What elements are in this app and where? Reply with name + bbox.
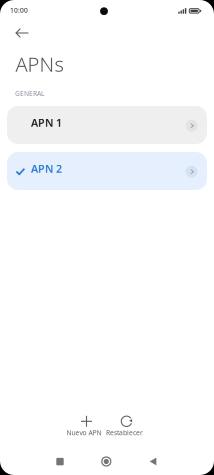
staticText: APNs xyxy=(15,51,63,77)
button[interactable]: APN 2 xyxy=(7,152,207,190)
button[interactable]: APN 1 xyxy=(7,106,207,144)
button[interactable]: Back xyxy=(6,20,38,46)
staticText: Restablecer xyxy=(106,428,143,437)
staticText: 10:00 xyxy=(10,6,28,15)
button[interactable]: Restablecer xyxy=(104,410,148,438)
staticText: Nuevo APN xyxy=(66,428,101,437)
staticText: APN 1 xyxy=(31,116,62,130)
staticText: APN 2 xyxy=(31,162,62,176)
button[interactable]: Back xyxy=(137,449,169,473)
staticText: GENERAL xyxy=(15,89,45,98)
button[interactable]: Recent apps xyxy=(44,450,76,474)
button[interactable]: Home xyxy=(90,449,122,473)
button[interactable]: Nuevo APN xyxy=(64,410,108,438)
